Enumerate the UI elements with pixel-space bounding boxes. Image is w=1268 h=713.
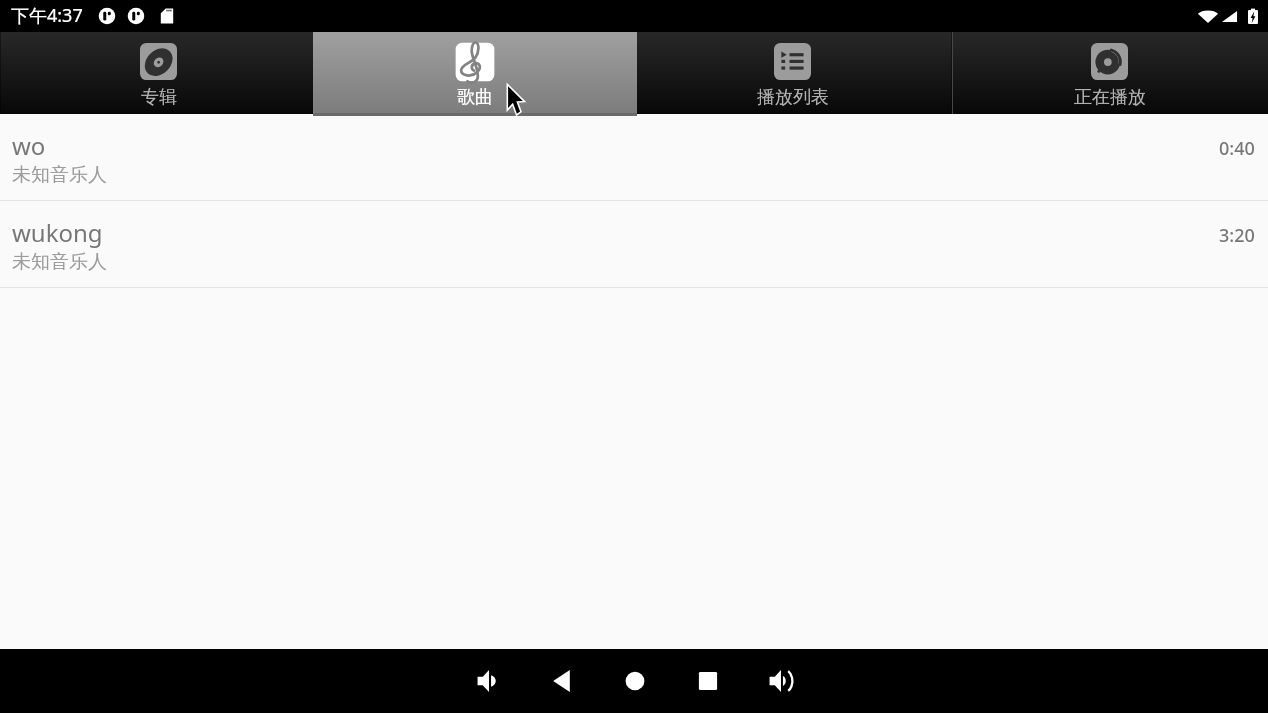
button[interactable]: wo	[0, 114, 1268, 201]
staticText: 播放列表	[757, 86, 829, 109]
staticText: 0:40	[1219, 136, 1255, 161]
button[interactable]: wukong	[0, 201, 1268, 288]
button[interactable]: 专辑	[0, 32, 317, 114]
staticText: 未知音乐人	[12, 250, 107, 274]
staticText: 专辑	[141, 86, 177, 109]
button[interactable]: Back	[525, 649, 598, 713]
staticText: 未知音乐人	[12, 163, 107, 187]
button[interactable]: 播放列表	[634, 32, 951, 114]
staticText: wo	[12, 129, 46, 162]
staticText: wukong	[12, 216, 103, 249]
staticText: 歌曲	[457, 86, 493, 109]
button[interactable]: 歌曲	[313, 32, 637, 116]
button[interactable]: Volume up	[744, 649, 817, 713]
button[interactable]: Home	[598, 649, 671, 713]
button[interactable]: Volume down	[452, 649, 525, 713]
staticText: 正在播放	[1074, 86, 1146, 109]
staticText: 3:20	[1219, 223, 1255, 248]
staticText: 下午4:37	[11, 3, 83, 28]
button[interactable]: 正在播放	[951, 32, 1268, 114]
button[interactable]: Recent apps	[671, 649, 744, 713]
